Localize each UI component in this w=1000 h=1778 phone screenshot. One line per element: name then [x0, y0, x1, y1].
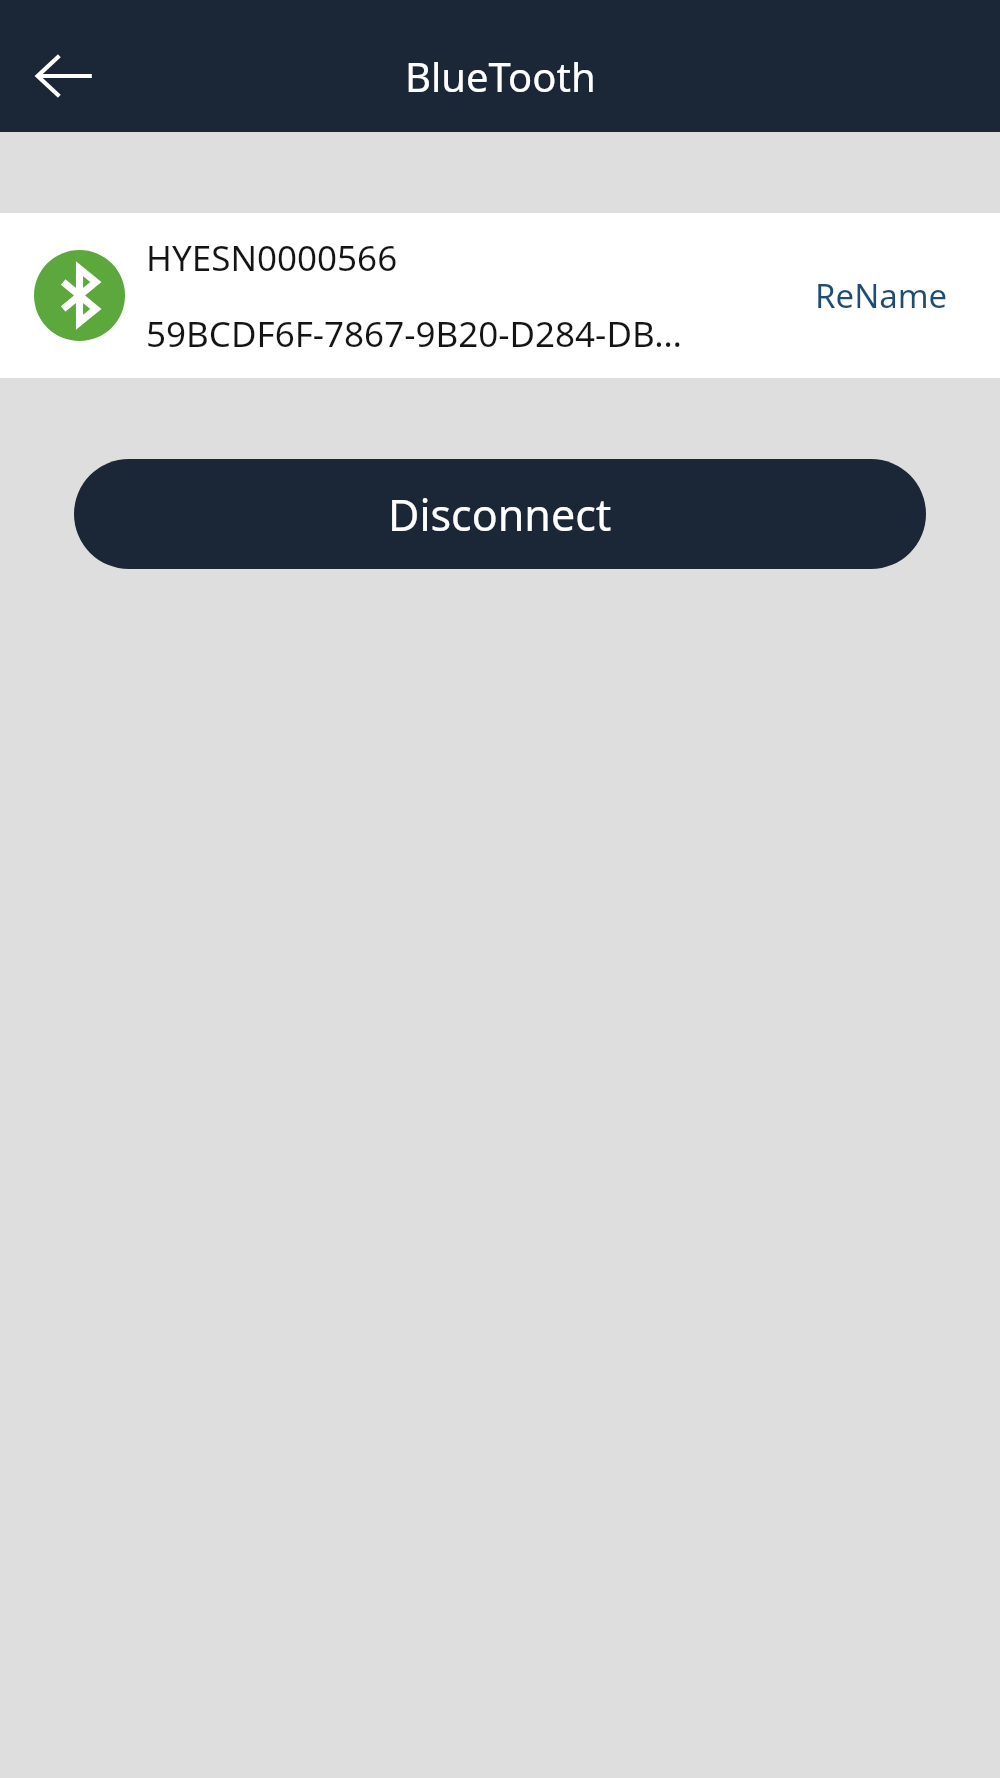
staticText: BlueTooth [405, 49, 596, 103]
button[interactable]: Disconnect [74, 459, 926, 569]
button[interactable]: Back [20, 32, 108, 120]
staticText: ReName [815, 273, 948, 318]
button[interactable]: ReName [797, 257, 966, 334]
staticText: HYESN0000566 [146, 234, 398, 282]
button[interactable]: HYESN0000566 [0, 213, 1000, 378]
staticText: Disconnect [388, 485, 612, 544]
staticText: 59BCDF6F-7867-9B20-D284-DB… [146, 310, 683, 358]
